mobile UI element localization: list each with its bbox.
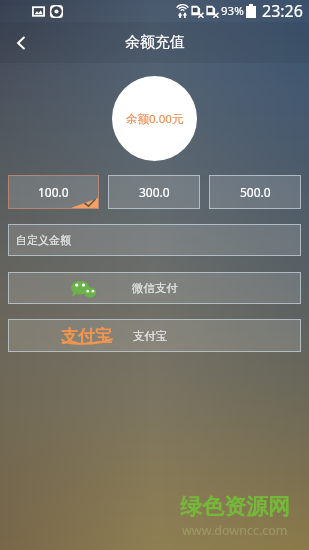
staticText: 100.0 bbox=[38, 184, 69, 200]
button[interactable]: 100.0 bbox=[8, 175, 99, 209]
staticText: 绿色资源网 bbox=[180, 493, 290, 521]
button[interactable]: 300.0 bbox=[108, 175, 200, 209]
staticText: 300.0 bbox=[139, 184, 170, 200]
button[interactable]: 500.0 bbox=[209, 175, 301, 209]
button[interactable]: Back bbox=[0, 22, 42, 63]
staticText: www.downcc.com bbox=[182, 522, 288, 539]
button[interactable]: 支付宝 bbox=[8, 319, 301, 352]
staticText: 自定义金额 bbox=[16, 233, 71, 247]
button[interactable]: 微信支付 bbox=[8, 272, 301, 304]
button[interactable]: 自定义金额 bbox=[8, 224, 301, 256]
staticText: 23:26 bbox=[262, 0, 303, 22]
staticText: 余额充值 bbox=[125, 33, 185, 52]
staticText: 微信支付 bbox=[132, 281, 178, 295]
staticText: 93% bbox=[221, 3, 244, 19]
staticText: 支付宝 bbox=[133, 329, 168, 343]
staticText: 支付宝 bbox=[61, 326, 112, 345]
staticText: 余额0.00元 bbox=[126, 111, 184, 127]
staticText: 500.0 bbox=[240, 184, 271, 200]
